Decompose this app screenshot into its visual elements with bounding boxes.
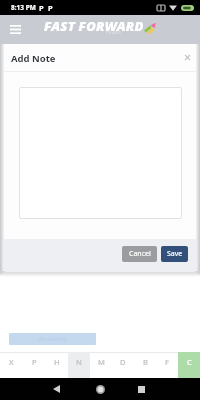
staticText: D [120, 357, 126, 367]
button[interactable]: D [112, 352, 134, 378]
button[interactable]: F [156, 352, 178, 378]
staticText: Add Note [11, 52, 56, 65]
staticText: X [9, 357, 14, 367]
button[interactable]: C [178, 352, 200, 378]
button[interactable]: P [23, 352, 46, 378]
staticText: Save [167, 249, 183, 259]
staticText: H [54, 357, 60, 367]
button[interactable]: N [68, 352, 90, 378]
button[interactable]: Close dialog [180, 50, 194, 64]
button[interactable]: H [46, 352, 68, 378]
button[interactable]: B [134, 352, 156, 378]
button[interactable]: Recent apps [129, 378, 153, 400]
staticText: M [98, 357, 105, 367]
staticText: B [143, 357, 148, 367]
button[interactable]: Back [44, 378, 68, 400]
staticText: T R A N S [106, 30, 121, 35]
staticText: WhatsApp [38, 335, 67, 343]
staticText: C [187, 357, 192, 367]
button[interactable]: Save [161, 246, 188, 262]
staticText: Cancel [129, 249, 151, 259]
staticText: N [76, 357, 82, 367]
staticText: F [165, 357, 169, 367]
button[interactable]: Open navigation menu [4, 15, 26, 44]
button[interactable] [19, 87, 182, 219]
button[interactable]: X [0, 352, 23, 378]
staticText: FAST FORWARD [44, 17, 144, 35]
button[interactable]: M [90, 352, 112, 378]
button[interactable]: Cancel [122, 246, 157, 262]
staticText: P [39, 3, 44, 13]
staticText: P [48, 3, 53, 13]
button[interactable]: Home [88, 378, 112, 400]
staticText: 8:13 PM [11, 3, 36, 12]
staticText: P [32, 357, 37, 367]
